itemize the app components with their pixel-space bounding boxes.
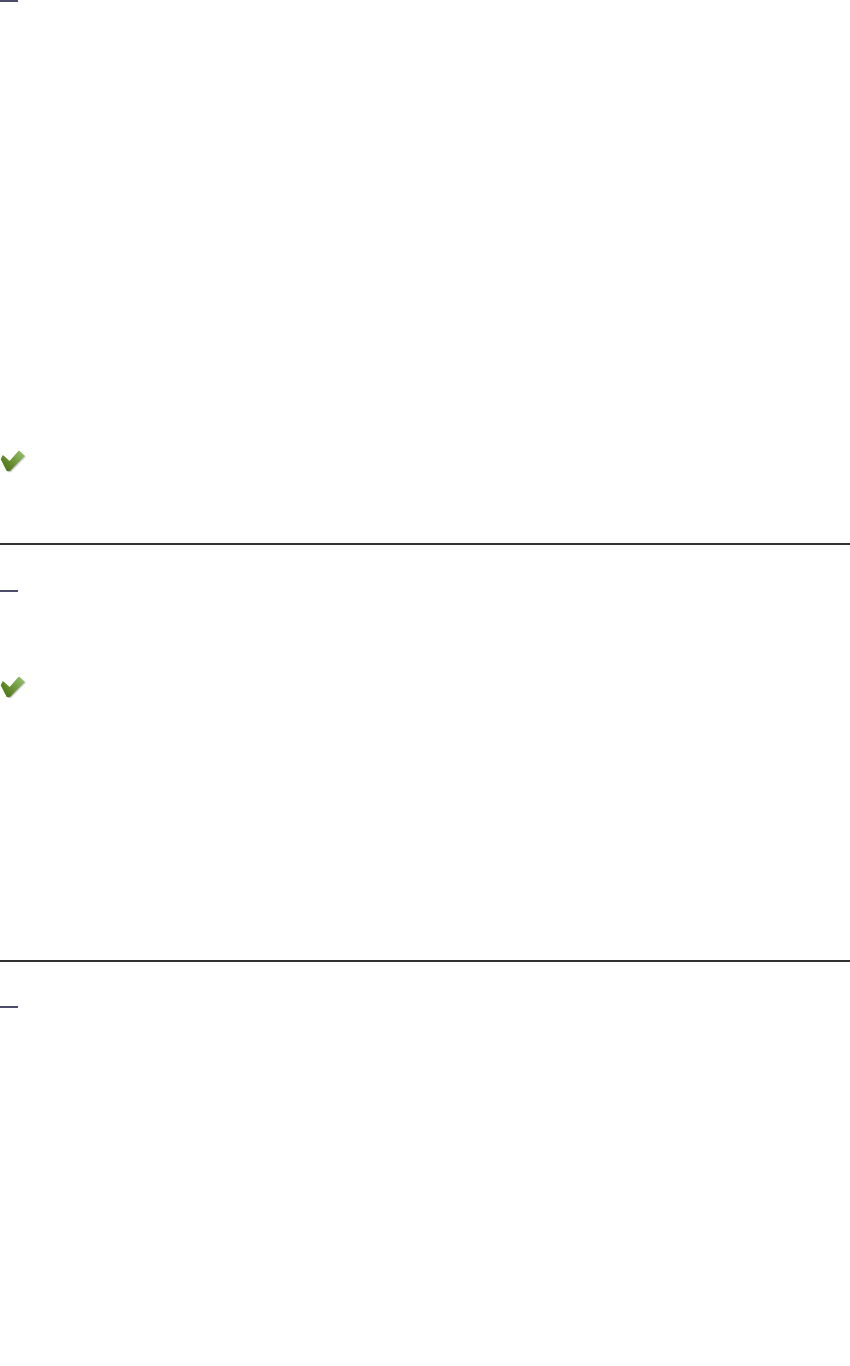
button[interactable]: Verified: [0, 676, 25, 697]
button[interactable]: Verified: [0, 450, 25, 471]
